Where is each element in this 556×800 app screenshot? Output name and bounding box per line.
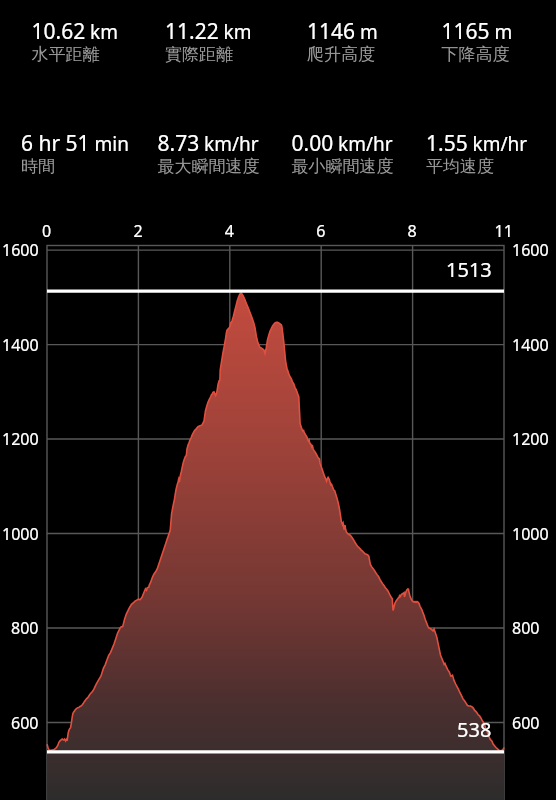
button[interactable]: Hike elevation profile and statistics [0, 0, 556, 800]
